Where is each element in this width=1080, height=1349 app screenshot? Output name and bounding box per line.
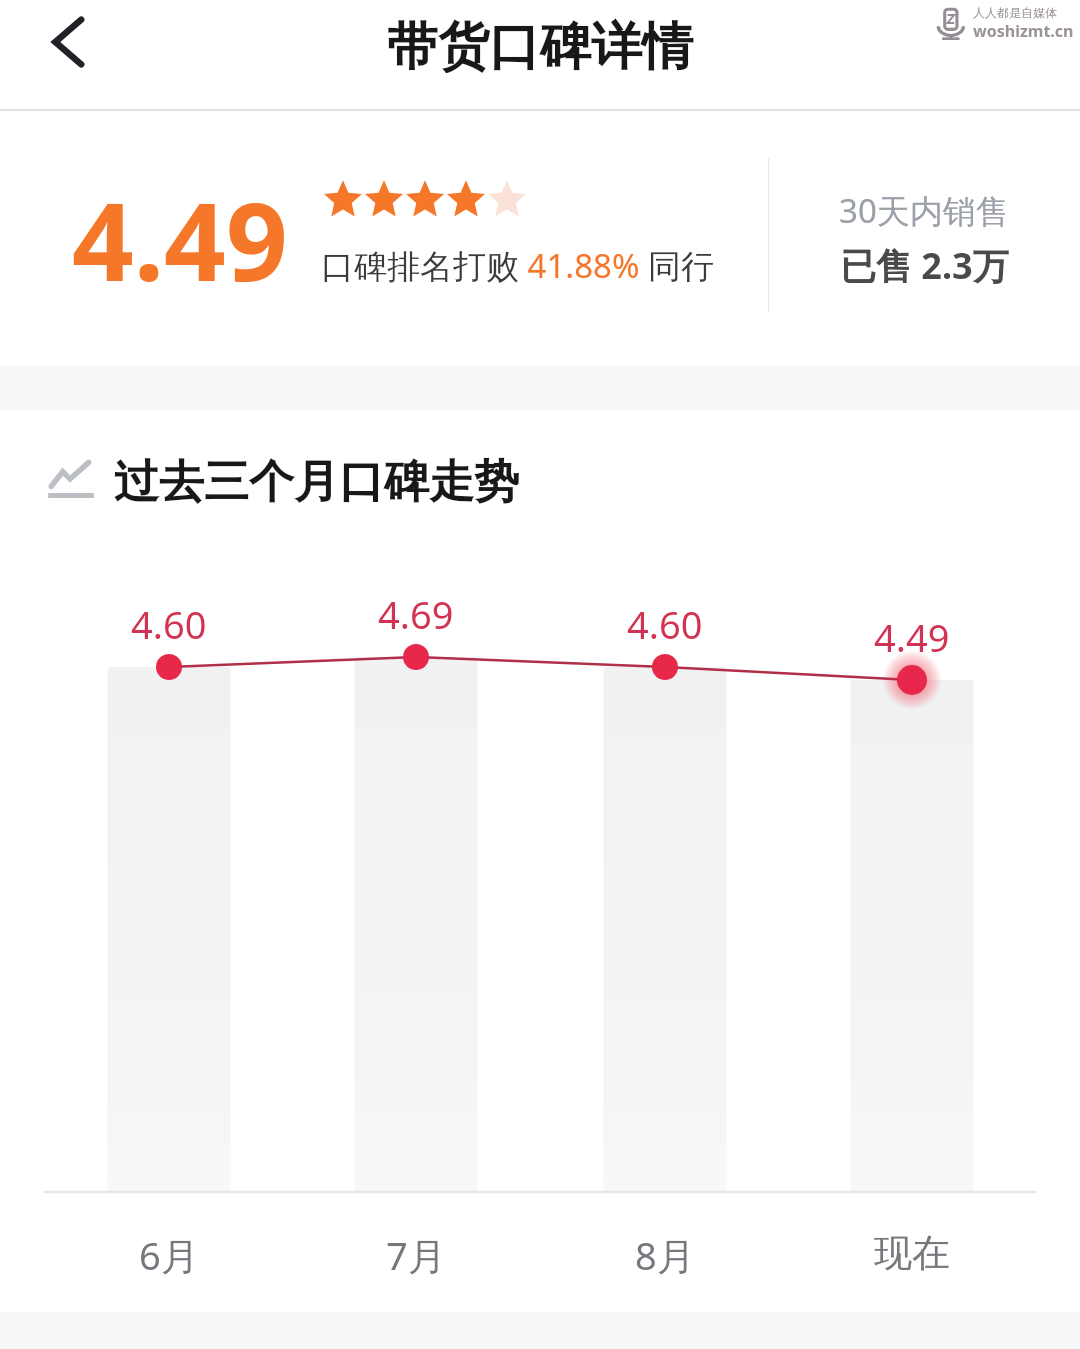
staticText: 30天内销售 — [839, 188, 1009, 233]
button[interactable]: Back — [28, 0, 112, 84]
staticText: 带货口碑详情 — [387, 15, 693, 79]
staticText: 口碑排名打败 41.88% 同行 — [321, 243, 714, 288]
staticText: 已售 2.3万 — [840, 241, 1009, 290]
staticText: 6月 — [139, 1229, 199, 1281]
staticText: 7月 — [386, 1229, 446, 1281]
staticText: 人人都是自媒体 — [973, 5, 1057, 20]
staticText: woshizmt.cn — [973, 20, 1074, 42]
staticText: 4.49 — [874, 611, 950, 663]
button[interactable]: 过去三个月口碑走势 — [0, 426, 1080, 534]
staticText: 8月 — [635, 1229, 695, 1281]
staticText: 4.60 — [131, 598, 207, 650]
staticText: 现在 — [874, 1229, 950, 1277]
staticText: 过去三个月口碑走势 — [114, 454, 519, 511]
staticText: 4.69 — [378, 588, 454, 640]
staticText: 4.60 — [627, 598, 703, 650]
button[interactable]: 4.49 — [0, 110, 1080, 360]
staticText: 4.49 — [72, 166, 288, 313]
